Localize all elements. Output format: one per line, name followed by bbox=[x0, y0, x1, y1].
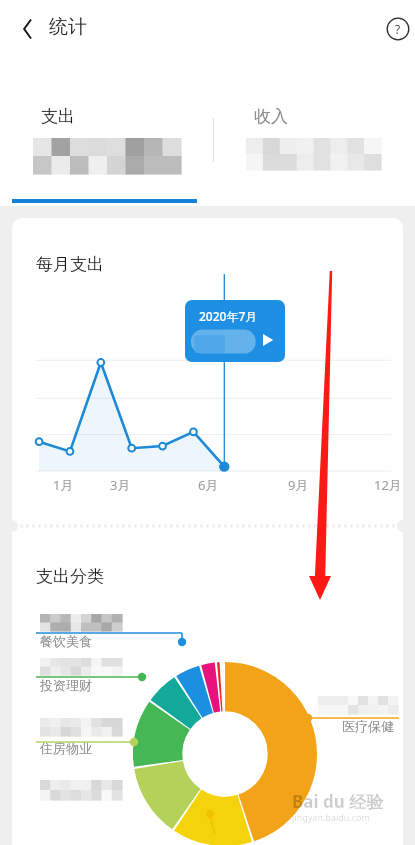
button[interactable]: 投资理财 bbox=[32, 658, 212, 704]
button[interactable]: 2020年7月 bbox=[185, 300, 285, 362]
staticText: 1月 bbox=[53, 476, 74, 494]
button[interactable]: 餐饮美食 bbox=[32, 614, 212, 660]
staticText: 支出分类 bbox=[36, 566, 104, 587]
staticText: 统计 bbox=[49, 15, 87, 39]
staticText: 9月 bbox=[288, 476, 309, 494]
staticText: 收入 bbox=[254, 106, 288, 127]
staticText: 医疗保健 bbox=[342, 718, 394, 734]
staticText: 3月 bbox=[110, 476, 131, 494]
staticText: ? bbox=[395, 21, 401, 37]
staticText: 投资理财 bbox=[40, 677, 92, 693]
staticText: jingyan.baidu.com bbox=[292, 811, 370, 823]
staticText: 2020年7月 bbox=[199, 308, 258, 324]
staticText: 每月支出 bbox=[36, 254, 104, 275]
button[interactable]: 收入 bbox=[213, 104, 415, 198]
button[interactable]: 医疗保健 bbox=[314, 696, 415, 742]
staticText: 6月 bbox=[198, 476, 219, 494]
button[interactable]: 支出 bbox=[0, 104, 207, 198]
staticText: 餐饮美食 bbox=[40, 633, 92, 649]
staticText: Bai du 经验 bbox=[292, 790, 384, 813]
button[interactable]: Help bbox=[381, 12, 415, 46]
staticText: 12月 bbox=[374, 476, 402, 494]
staticText: 住房物业 bbox=[40, 740, 92, 756]
button[interactable] bbox=[32, 780, 212, 820]
button[interactable]: 住房物业 bbox=[32, 718, 212, 764]
button[interactable]: Back bbox=[8, 10, 46, 48]
staticText: 支出 bbox=[41, 106, 75, 127]
